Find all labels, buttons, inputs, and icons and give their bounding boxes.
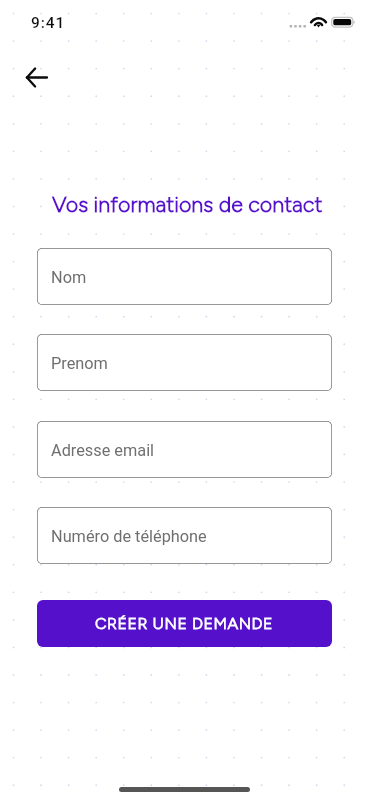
staticText: 9:41 [31, 14, 66, 32]
button[interactable]: CRÉER UNE DEMANDE [37, 600, 332, 647]
staticText: CRÉER UNE DEMANDE [95, 614, 274, 633]
staticText: Vos informations de contact [52, 192, 323, 218]
staticText: Numéro de téléphone [51, 527, 207, 546]
button[interactable]: Back [19, 60, 54, 95]
staticText: Adresse email [51, 441, 155, 460]
button[interactable]: Adresse email [37, 421, 332, 478]
staticText: Prenom [51, 354, 108, 373]
button[interactable]: Nom [37, 248, 332, 305]
button[interactable]: Numéro de téléphone [37, 507, 332, 564]
staticText: Nom [51, 268, 87, 287]
button[interactable]: Prenom [37, 334, 332, 391]
